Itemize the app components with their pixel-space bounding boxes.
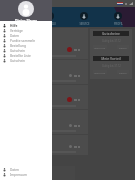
- button[interactable]: Impressum: [0, 172, 52, 177]
- button[interactable]: Angebote: [0, 7, 33, 27]
- button[interactable]: Gutscheine: [90, 29, 132, 54]
- staticText: Gutscheine: [102, 32, 120, 36]
- button[interactable]: [1, 28, 88, 59]
- button[interactable]: Gutschein: [0, 58, 52, 63]
- staticText: Gutschein: [10, 59, 26, 63]
- button[interactable]: Mehr Info: [93, 70, 107, 74]
- staticText: Punkte sammeln: [10, 39, 36, 43]
- button[interactable]: Service: [67, 7, 101, 27]
- staticText: Daten: [10, 34, 20, 38]
- staticText: Mein Vorteil: [101, 57, 121, 61]
- staticText: ANGEBOTE: [10, 22, 24, 26]
- button[interactable]: [1, 135, 88, 155]
- button[interactable]: [1, 60, 88, 84]
- staticText: Bestellung: [10, 44, 26, 48]
- staticText: Verträge: [10, 29, 23, 33]
- button[interactable]: [1, 85, 88, 109]
- button[interactable]: Details: [117, 70, 129, 74]
- staticText: Impressum: [10, 173, 28, 177]
- button[interactable]: Mein Vorteil: [90, 54, 132, 79]
- staticText: Hilfe: [10, 24, 18, 28]
- staticText: Daten: [10, 168, 20, 172]
- staticText: Bestellte Liste: [10, 54, 31, 58]
- staticText: VORTEILE: [44, 22, 56, 26]
- staticText: SERVICE: [79, 22, 90, 26]
- button[interactable]: Hilfe: [0, 23, 52, 28]
- staticText: Dieter Mayer: [15, 18, 38, 21]
- button[interactable]: Punkte sammeln: [0, 38, 52, 43]
- staticText: PROFIL: [114, 22, 123, 26]
- button[interactable]: Details: [117, 45, 129, 49]
- button[interactable]: Mehr Info: [93, 45, 107, 49]
- button[interactable]: [1, 110, 88, 134]
- staticText: Mehr Info: [94, 46, 106, 49]
- staticText: Gultig bis 31.12: [102, 39, 121, 43]
- staticText: Gutschein: [10, 49, 26, 53]
- staticText: Gultig bis 31.12: [102, 64, 121, 68]
- staticText: Details: [119, 46, 127, 49]
- button[interactable]: Bestellung: [0, 43, 52, 48]
- button[interactable]: Daten: [0, 33, 52, 38]
- button[interactable]: Verträge: [0, 28, 52, 33]
- button[interactable]: Profil: [101, 7, 135, 27]
- staticText: Mehr Info: [94, 71, 106, 74]
- button[interactable]: Vorteile: [33, 7, 67, 27]
- staticText: Details: [119, 71, 127, 74]
- button[interactable]: Daten: [0, 167, 52, 172]
- button[interactable]: Gutschein: [0, 48, 52, 53]
- button[interactable]: Bestellte Liste: [0, 53, 52, 58]
- button[interactable]: [1, 166, 75, 180]
